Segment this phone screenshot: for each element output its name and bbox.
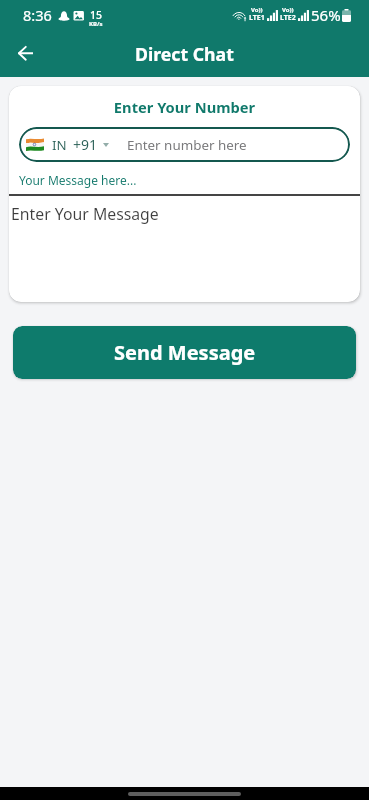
button[interactable]: IN <box>19 127 350 162</box>
staticText: 8:36 <box>23 5 52 25</box>
button[interactable]: Back <box>7 35 43 71</box>
staticText: Your Message here... <box>19 172 137 188</box>
staticText: Vo)) <box>251 6 263 14</box>
staticText: Direct Chat <box>135 42 234 66</box>
staticText: 56% <box>311 5 341 25</box>
staticText: KB/s <box>89 20 103 28</box>
staticText: LTE1 <box>249 13 265 23</box>
staticText: Enter number here <box>127 136 247 154</box>
staticText: Send Message <box>114 339 256 366</box>
staticText: Vo)) <box>282 6 294 14</box>
staticText: Enter Your Number <box>9 97 360 117</box>
staticText: IN <box>52 136 67 154</box>
staticText: 15 <box>90 8 103 22</box>
staticText: Enter Your Message <box>11 203 159 225</box>
button[interactable]: Send Message <box>13 326 356 379</box>
staticText: +91 <box>73 135 98 154</box>
staticText: LTE2 <box>280 13 296 23</box>
